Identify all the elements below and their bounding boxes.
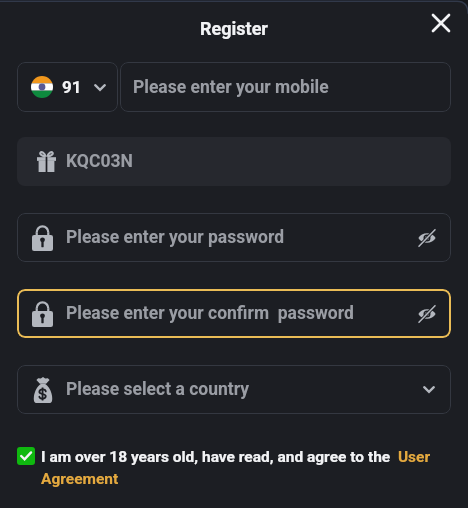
button[interactable]: KQC03N [17,137,451,186]
staticText: Please enter your mobile [133,77,329,98]
button[interactable]: I am over 18 years old, have read, and a… [17,448,451,488]
button[interactable]: Toggle password visibility [414,225,440,251]
staticText: Register [200,18,268,39]
button[interactable]: Please enter your password [17,213,451,262]
button[interactable]: Toggle password visibility [414,301,440,327]
button[interactable]: Please select a country [17,365,451,414]
button[interactable]: 91 [17,62,118,112]
staticText: Please enter your confirm password [66,303,414,324]
staticText: I am over 18 years old, have read, and a… [41,448,451,488]
button[interactable]: Please enter your mobile [120,62,451,112]
button[interactable]: Please enter your confirm password [17,289,451,338]
staticText: 91 [62,77,82,97]
button[interactable]: Close [424,6,458,40]
staticText: Please select a country [66,379,423,400]
staticText: Please enter your password [66,227,414,248]
staticText: KQC03N [66,151,133,172]
